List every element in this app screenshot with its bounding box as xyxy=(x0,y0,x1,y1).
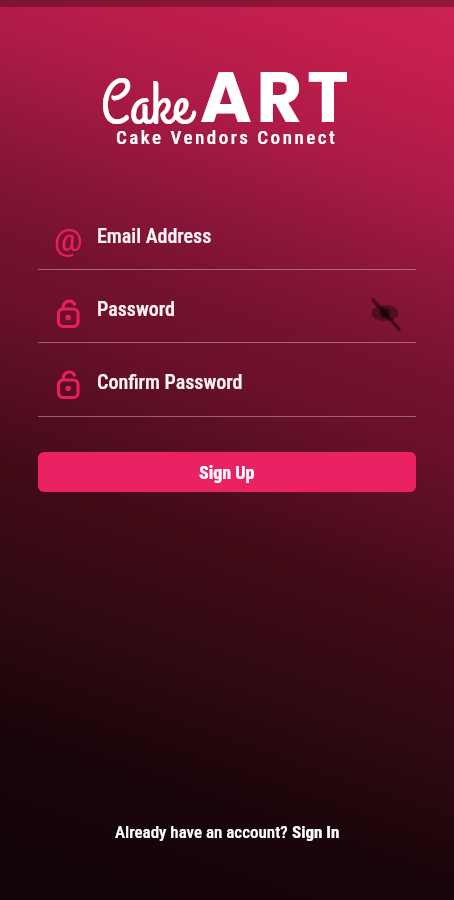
staticText: ART xyxy=(200,48,354,146)
staticText: Sign In xyxy=(292,822,340,842)
button[interactable]: Already have an account? xyxy=(115,822,340,842)
staticText: Sign Up xyxy=(199,462,255,483)
button[interactable]: Email Address xyxy=(38,204,416,267)
staticText: Confirm Password xyxy=(97,370,243,393)
staticText: Password xyxy=(97,297,175,320)
staticText: @ xyxy=(54,221,83,259)
staticText: Cake xyxy=(101,65,191,147)
button[interactable]: Confirm Password xyxy=(38,350,416,413)
staticText: Already have an account? xyxy=(115,822,292,842)
button[interactable] xyxy=(371,299,399,327)
staticText: Email Address xyxy=(97,224,212,247)
staticText: Cake Vendors Connect xyxy=(116,126,338,148)
button[interactable]: Password xyxy=(38,277,416,340)
button[interactable]: Sign Up xyxy=(38,452,416,492)
